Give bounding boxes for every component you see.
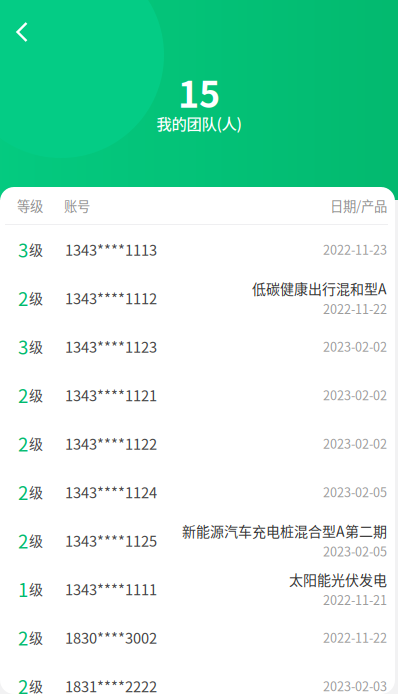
button[interactable]: 1 (0, 564, 395, 613)
staticText: 2 (18, 478, 28, 505)
staticText: 1343****1123 (65, 336, 157, 357)
staticText: 1343****1121 (65, 384, 157, 405)
button[interactable]: 3 (0, 225, 395, 273)
staticText: 级 (29, 433, 43, 453)
staticText: 级 (29, 627, 43, 647)
staticText: 3 (18, 333, 28, 360)
staticText: 级 (29, 482, 43, 502)
staticText: 1343****1122 (65, 433, 157, 454)
staticText: 2 (18, 284, 28, 311)
staticText: 1343****1124 (65, 481, 157, 502)
staticText: 1830****3002 (65, 627, 157, 648)
staticText: 15 (178, 66, 220, 118)
staticText: 2 (18, 672, 28, 694)
staticText: 1343****1125 (65, 530, 157, 551)
button[interactable]: 2 (0, 370, 395, 419)
staticText: 日期/产品 (330, 196, 387, 215)
staticText: 级 (29, 239, 43, 259)
staticText: 2023-02-05 (323, 542, 387, 560)
staticText: 1 (18, 575, 28, 602)
button[interactable]: 2 (0, 467, 395, 516)
staticText: 2 (18, 527, 28, 554)
button[interactable]: 2 (0, 661, 395, 694)
staticText: 1343****1112 (65, 287, 157, 308)
staticText: 等级 (17, 196, 43, 215)
button[interactable]: 2 (0, 419, 395, 467)
staticText: 1831****2222 (65, 675, 157, 694)
staticText: 2022-11-22 (323, 299, 387, 317)
staticText: 2023-02-02 (323, 386, 387, 404)
staticText: 2023-02-02 (323, 434, 387, 452)
staticText: 太阳能光伏发电 (289, 569, 387, 589)
staticText: 级 (29, 676, 43, 694)
button[interactable]: Back (2, 12, 42, 52)
staticText: 低碳健康出行混和型A (252, 278, 387, 298)
staticText: 2022-11-22 (323, 628, 387, 646)
staticText: 级 (29, 336, 43, 356)
staticText: 1343****1111 (65, 578, 157, 599)
staticText: 2023-02-03 (323, 677, 387, 694)
button[interactable]: 2 (0, 273, 395, 322)
staticText: 2022-11-23 (323, 240, 387, 258)
button[interactable]: 2 (0, 516, 395, 564)
staticText: 新能源汽车充电桩混合型A第二期 (182, 520, 387, 541)
staticText: 3 (18, 236, 28, 263)
staticText: 级 (29, 385, 43, 405)
staticText: 2023-02-02 (323, 337, 387, 355)
staticText: 账号 (64, 196, 90, 215)
staticText: 级 (29, 530, 43, 550)
button[interactable]: 2 (0, 613, 395, 661)
staticText: 1343****1113 (65, 239, 157, 260)
staticText: 2023-02-05 (323, 483, 387, 501)
staticText: 级 (29, 579, 43, 599)
staticText: 级 (29, 288, 43, 308)
button[interactable]: 3 (0, 322, 395, 370)
staticText: 2022-11-21 (323, 590, 387, 608)
staticText: 2 (18, 430, 28, 457)
staticText: 我的团队(人) (156, 112, 241, 134)
staticText: 2 (18, 624, 28, 651)
staticText: 2 (18, 381, 28, 408)
